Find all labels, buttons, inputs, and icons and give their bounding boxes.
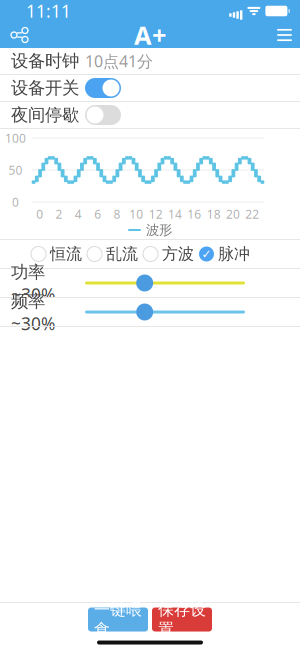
staticText: 22 xyxy=(245,206,259,222)
staticText: 功率 ~30% xyxy=(11,260,55,306)
staticText: 50 xyxy=(8,162,22,178)
staticText: 0 xyxy=(36,206,43,222)
button[interactable]: Share xyxy=(0,22,37,48)
staticText: 4 xyxy=(75,206,82,222)
button[interactable]: 设备开关 xyxy=(0,75,300,101)
staticText: 16 xyxy=(187,206,201,222)
staticText: 11:11 xyxy=(26,0,71,22)
staticText: 6 xyxy=(94,206,101,222)
staticText: 12 xyxy=(149,206,163,222)
staticText: 夜间停歇 xyxy=(11,104,79,126)
staticText: 100 xyxy=(5,130,26,146)
staticText: 频率 ~30% xyxy=(11,289,55,335)
staticText: 方波 xyxy=(162,244,194,264)
button[interactable]: 设备时钟 xyxy=(0,48,300,74)
button[interactable]: 夜间停歇 xyxy=(0,102,300,128)
button[interactable]: 方波 xyxy=(143,241,194,267)
staticText: 18 xyxy=(207,206,221,222)
button[interactable]: 一键喂食 xyxy=(88,607,148,631)
button[interactable]: 频率 ~30% xyxy=(0,298,300,326)
staticText: 保存设置 xyxy=(158,600,206,639)
button[interactable]: 功率 ~30% xyxy=(0,269,300,297)
button[interactable]: 乱流 xyxy=(87,241,138,267)
staticText: 设备开关 xyxy=(11,77,79,99)
staticText: 乱流 xyxy=(106,244,138,264)
button[interactable]: ✓ xyxy=(199,241,250,267)
staticText: ✓ xyxy=(201,247,211,261)
staticText: 恒流 xyxy=(50,244,82,264)
staticText: 20 xyxy=(226,206,240,222)
staticText: 脉冲 xyxy=(218,244,250,264)
button[interactable]: Menu xyxy=(269,22,300,48)
staticText: 2 xyxy=(55,206,62,222)
button[interactable]: 恒流 xyxy=(31,241,82,267)
button[interactable]: 保存设置 xyxy=(152,607,212,631)
staticText: 0 xyxy=(12,194,19,210)
staticText: 10 xyxy=(129,206,143,222)
staticText: 8 xyxy=(113,206,120,222)
staticText: 波形 xyxy=(146,222,172,238)
staticText: 10点41分 xyxy=(85,50,153,72)
staticText: 一键喂食 xyxy=(94,600,142,639)
staticText: A+ xyxy=(134,18,166,52)
staticText: 设备时钟 xyxy=(11,50,79,72)
staticText: 14 xyxy=(168,206,182,222)
